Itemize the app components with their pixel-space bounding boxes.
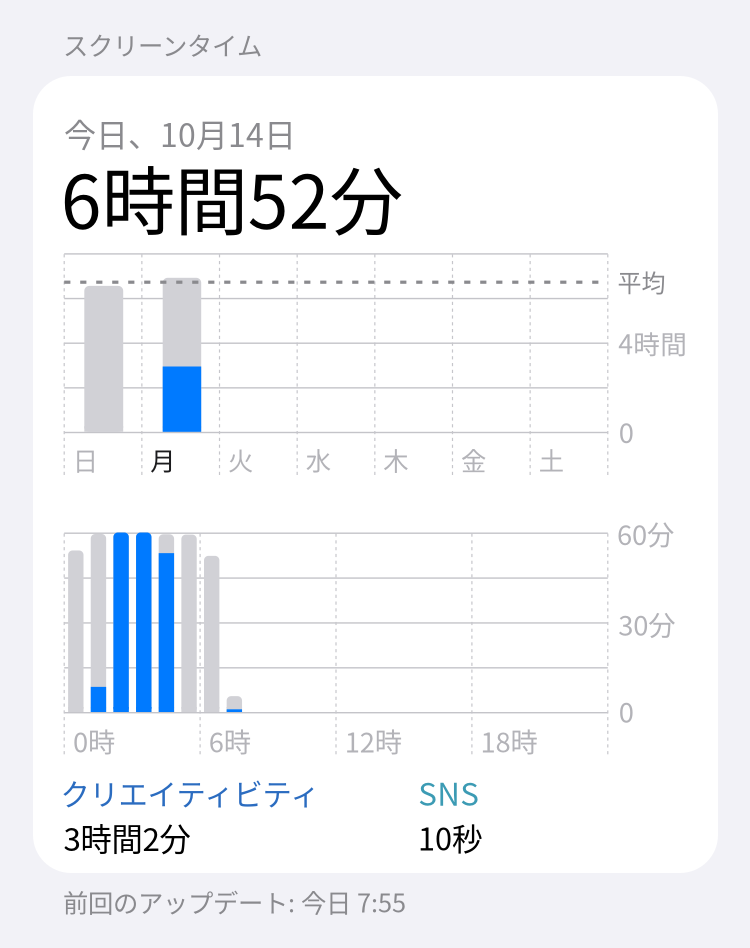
staticText: SNS — [418, 769, 479, 815]
staticText: 3時間2分 — [64, 815, 191, 860]
staticText: 火 — [228, 441, 253, 478]
staticText: 前回のアップデート: 今日 7:55 — [63, 883, 406, 920]
staticText: 0 — [619, 691, 634, 731]
staticText: 水 — [306, 441, 331, 478]
staticText: 18時 — [481, 721, 538, 760]
staticText: 60分 — [617, 514, 674, 553]
staticText: 月 — [150, 441, 175, 478]
staticText: 土 — [539, 441, 564, 478]
staticText: 10秒 — [418, 815, 483, 859]
staticText: 6時間52分 — [61, 144, 403, 250]
staticText: 6時 — [209, 721, 251, 760]
staticText: 今日、10月14日 — [64, 110, 296, 156]
staticText: クリエイティビティ — [60, 771, 319, 814]
staticText: 4時間 — [618, 323, 687, 362]
staticText: 日 — [73, 441, 98, 478]
staticText: 金 — [461, 441, 486, 478]
staticText: 0 — [619, 412, 634, 451]
staticText: 12時 — [345, 721, 402, 760]
staticText: 0時 — [73, 721, 115, 760]
staticText: スクリーンタイム — [63, 26, 262, 62]
button[interactable]: クリエイティビティ — [0, 0, 259, 42]
staticText: 木 — [383, 441, 408, 478]
staticText: 平均 — [617, 264, 665, 299]
staticText: 30分 — [618, 604, 675, 644]
